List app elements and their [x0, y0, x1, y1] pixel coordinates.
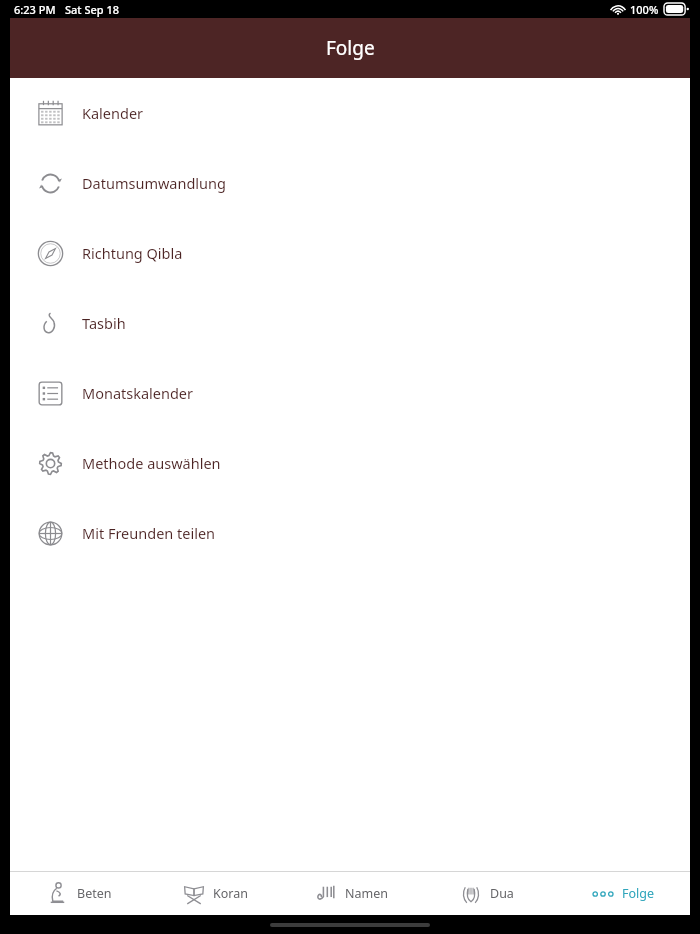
staticText: Beten	[77, 885, 112, 902]
staticText: Tasbih	[82, 313, 126, 333]
staticText: Namen	[345, 885, 388, 902]
button[interactable]: Kalender	[10, 78, 690, 148]
button[interactable]: Richtung Qibla	[10, 218, 690, 288]
button[interactable]: Mit Freunden teilen	[10, 498, 690, 568]
staticText: Folge	[622, 885, 655, 902]
button[interactable]: Koran	[146, 872, 282, 915]
button[interactable]: Datumsumwandlung	[10, 148, 690, 218]
staticText: Mit Freunden teilen	[82, 523, 216, 543]
staticText: Richtung Qibla	[82, 243, 183, 263]
button[interactable]: Dua	[418, 872, 554, 915]
staticText: 6:23 PM	[14, 2, 56, 17]
staticText: Koran	[213, 885, 248, 902]
button[interactable]: Folge	[554, 872, 690, 915]
staticText: Datumsumwandlung	[82, 173, 226, 193]
staticText: Folge	[326, 35, 375, 61]
staticText: Monatskalender	[82, 383, 194, 403]
button[interactable]: Monatskalender	[10, 358, 690, 428]
staticText: Methode auswählen	[82, 453, 221, 473]
staticText: Kalender	[82, 103, 144, 123]
staticText: 100%	[630, 2, 659, 17]
staticText: Dua	[490, 885, 514, 902]
button[interactable]: Namen	[282, 872, 418, 915]
button[interactable]: Methode auswählen	[10, 428, 690, 498]
button[interactable]: Beten	[10, 872, 146, 915]
button[interactable]: Tasbih	[10, 288, 690, 358]
staticText: Sat Sep 18	[65, 2, 120, 17]
